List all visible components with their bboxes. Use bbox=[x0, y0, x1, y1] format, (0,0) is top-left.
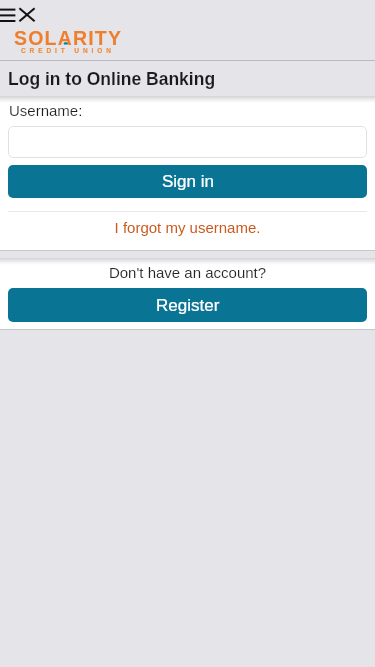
staticText: Username: bbox=[9, 102, 83, 119]
staticText: Sign in bbox=[162, 172, 214, 191]
staticText: CREDIT UNION bbox=[21, 47, 115, 54]
staticText: Log in to Online Banking bbox=[8, 69, 216, 89]
staticText: Don't have an account? bbox=[0, 264, 375, 281]
button[interactable]: Sign in bbox=[8, 165, 367, 198]
button[interactable]: Open navigation menu bbox=[0, 4, 17, 26]
button[interactable]: Close bbox=[19, 4, 35, 26]
button[interactable]: I forgot my username. bbox=[0, 219, 375, 236]
button[interactable]: Register bbox=[8, 288, 367, 322]
staticText: Register bbox=[156, 296, 220, 315]
button[interactable]: Solarity Credit Union home bbox=[12, 26, 127, 54]
button[interactable]: Username input field bbox=[8, 126, 367, 158]
staticText: SOLARITY bbox=[14, 27, 123, 49]
